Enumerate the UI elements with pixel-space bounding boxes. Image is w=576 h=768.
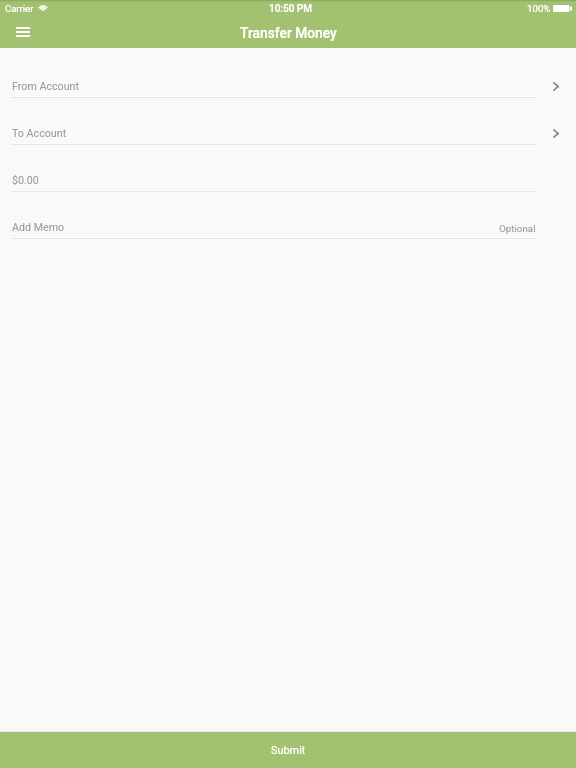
button[interactable]: Add Memo bbox=[0, 192, 576, 239]
staticText: 10:50 PM bbox=[269, 3, 312, 15]
staticText: From Account bbox=[12, 80, 79, 93]
button[interactable]: $0.00 bbox=[0, 145, 576, 192]
button[interactable]: From Account bbox=[0, 51, 576, 98]
staticText: $0.00 bbox=[12, 174, 39, 187]
staticText: 100% bbox=[527, 3, 551, 14]
staticText: To Account bbox=[12, 127, 67, 140]
button[interactable]: Open navigation menu bbox=[0, 16, 44, 48]
button[interactable]: Submit bbox=[0, 732, 576, 768]
staticText: Transfer Money bbox=[240, 25, 337, 41]
staticText: Optional bbox=[499, 223, 536, 234]
button[interactable]: To Account bbox=[0, 98, 576, 145]
staticText: Carrier bbox=[5, 3, 34, 14]
staticText: Submit bbox=[271, 744, 306, 757]
staticText: Add Memo bbox=[12, 221, 65, 234]
